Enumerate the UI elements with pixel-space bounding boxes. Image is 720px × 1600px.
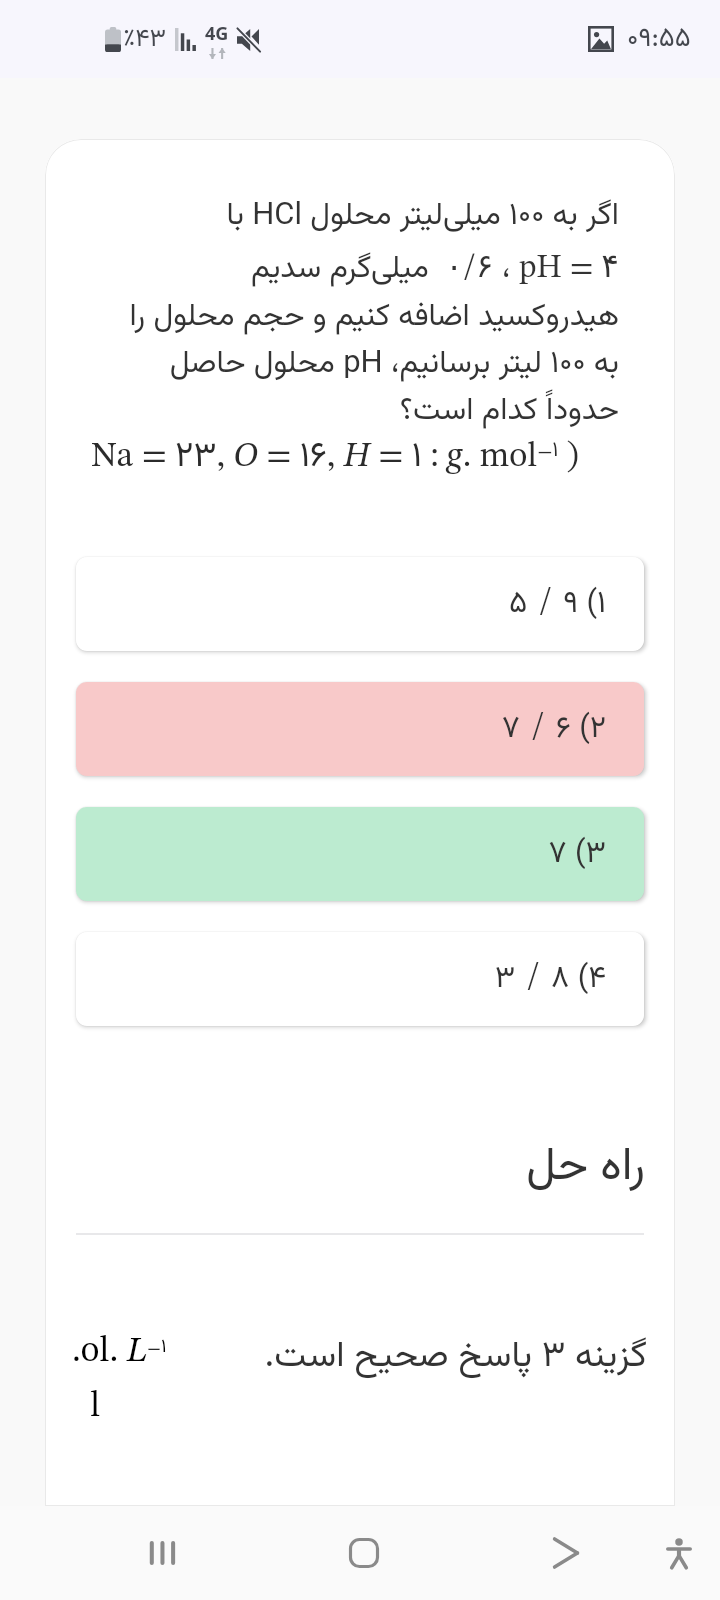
staticText: ۱) ۹ / ۵ — [509, 580, 606, 628]
staticText: راه حل — [45, 1132, 645, 1204]
staticText: Na = ۲۳, O = ۱۶, H = ۱ : g. mol−۱ ) — [91, 430, 579, 474]
staticText: ٪۴۳ — [123, 20, 167, 59]
staticText: گزینه ۳ پاسخ صحیح است. — [45, 1329, 647, 1385]
button[interactable]: ۴) ۸ / ۳ — [76, 932, 644, 1026]
staticText: .ol. L−۱ — [72, 1333, 167, 1370]
staticText: l — [90, 1389, 101, 1425]
button[interactable]: ۱) ۹ / ۵ — [76, 557, 644, 651]
staticText: اگر به ۱۰۰ میلی‌لیتر محلول HCl با ⁧⁦pH =… — [45, 192, 619, 435]
button[interactable]: Recent apps — [88, 1506, 235, 1600]
staticText: 4G — [205, 21, 229, 46]
button[interactable]: Home — [290, 1506, 437, 1600]
button[interactable]: Back — [492, 1506, 639, 1600]
staticText: ۳) ۷ — [548, 830, 606, 878]
staticText: ۲) ۶ / ۷ — [501, 705, 606, 753]
button[interactable]: Accessibility — [630, 1506, 720, 1600]
staticText: ۰۹:۵۵ — [627, 18, 691, 60]
staticText: ۴) ۸ / ۳ — [494, 955, 606, 1003]
button[interactable]: ۲) ۶ / ۷ — [76, 682, 644, 776]
button[interactable]: ۳) ۷ — [76, 807, 644, 901]
